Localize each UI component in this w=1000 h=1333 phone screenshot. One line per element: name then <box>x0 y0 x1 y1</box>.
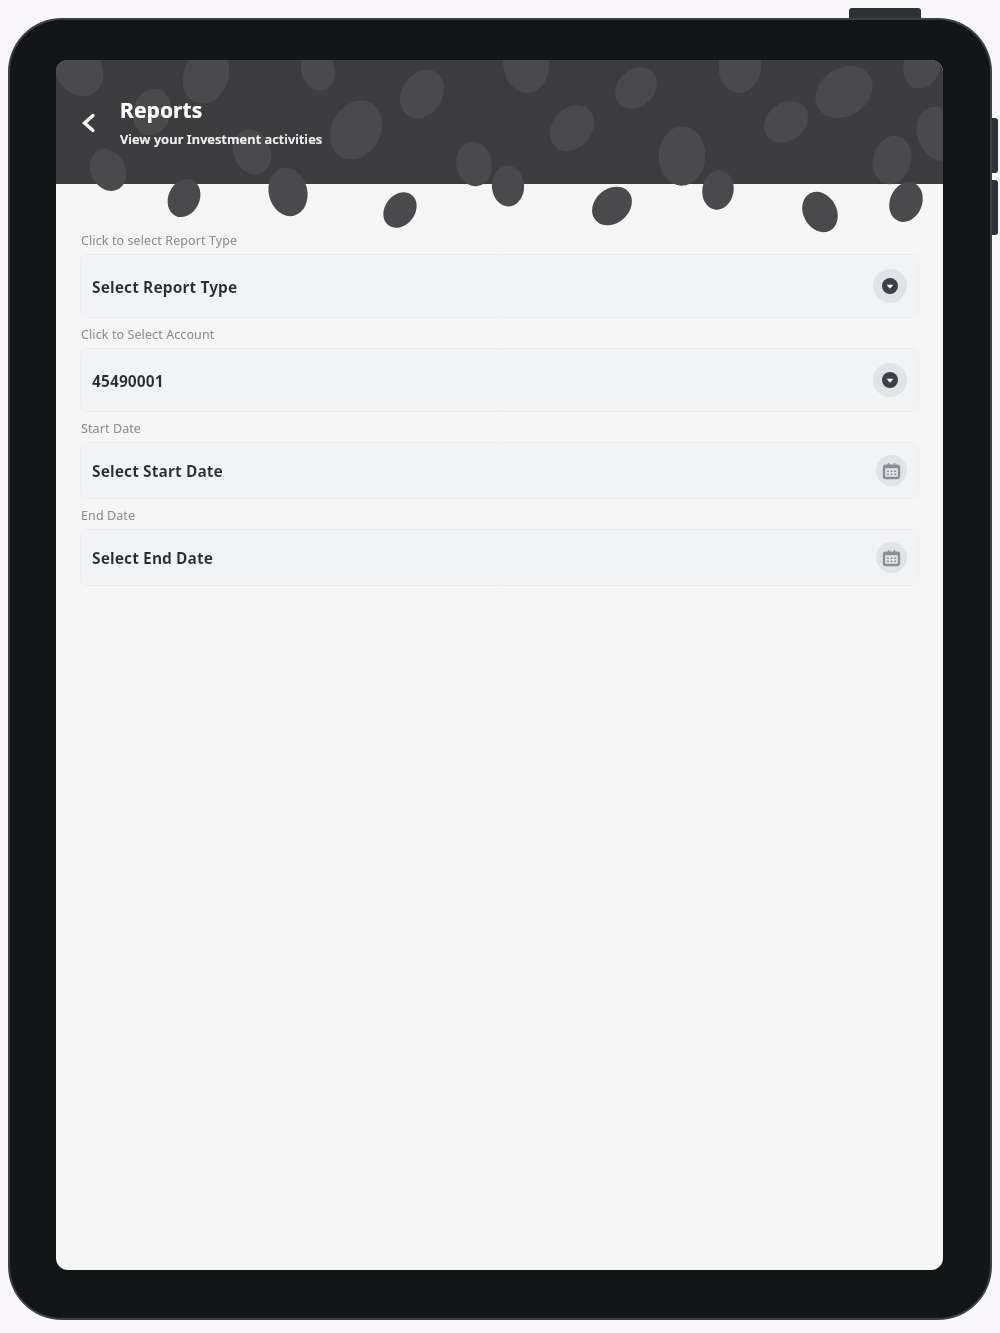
staticText: Click to Select Account <box>81 326 215 343</box>
staticText: Select Start Date <box>92 460 876 481</box>
staticText: Click to select Report Type <box>81 232 238 249</box>
staticText: Reports <box>120 96 203 125</box>
staticText: Select End Date <box>92 547 876 568</box>
button[interactable]: 45490001 <box>80 348 919 412</box>
button[interactable]: Select Report Type <box>80 254 919 318</box>
staticText: Select Report Type <box>92 276 873 297</box>
staticText: 45490001 <box>92 370 873 391</box>
button[interactable]: Back <box>66 100 112 146</box>
staticText: Start Date <box>81 420 142 437</box>
staticText: End Date <box>81 507 136 524</box>
button[interactable]: Select End Date <box>80 529 919 586</box>
button[interactable]: Select Start Date <box>80 442 919 499</box>
staticText: View your Investment activities <box>120 130 323 148</box>
